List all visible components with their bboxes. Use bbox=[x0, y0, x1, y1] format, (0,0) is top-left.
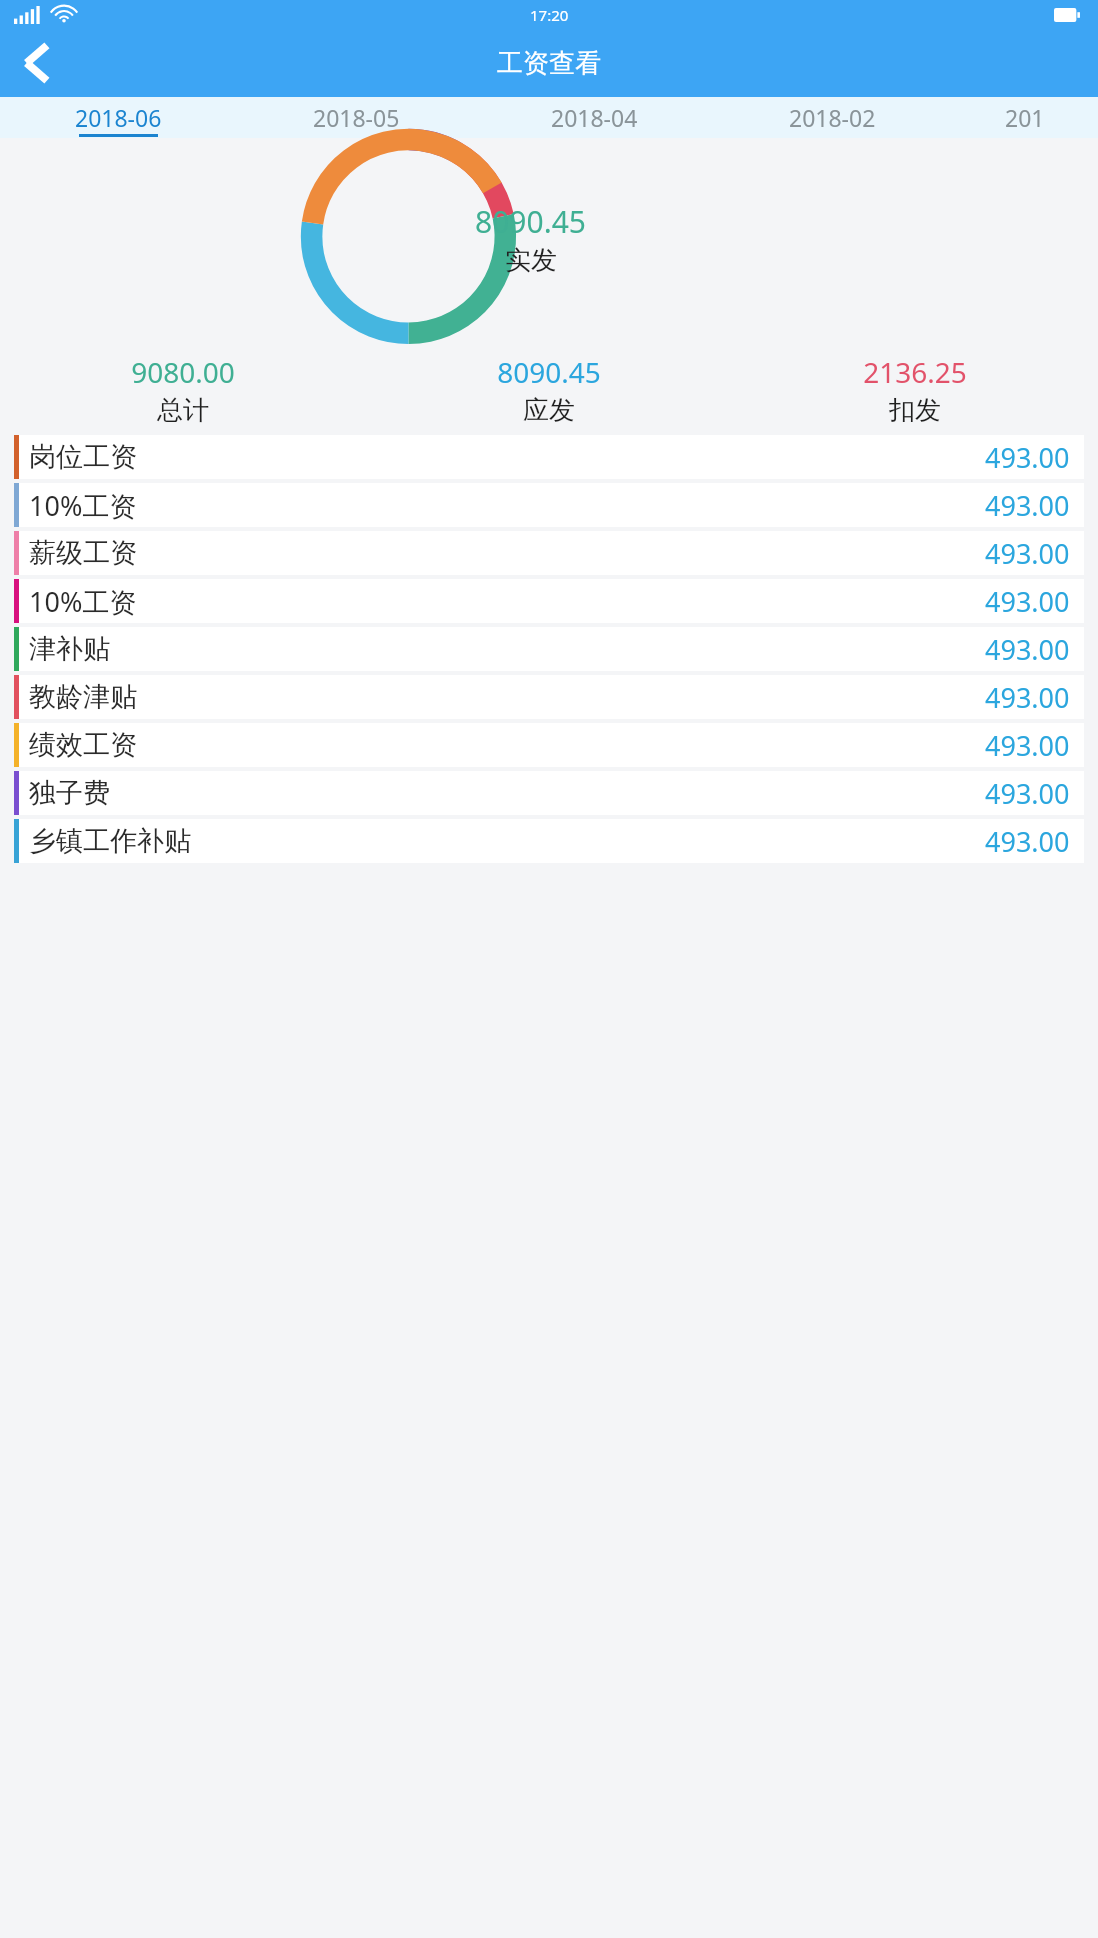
button[interactable]: 岗位工资 bbox=[14, 435, 1084, 479]
staticText: 493.00 bbox=[985, 439, 1070, 476]
staticText: 10%工资 bbox=[29, 487, 137, 524]
staticText: 工资查看 bbox=[497, 47, 601, 80]
button[interactable]: 10%工资 bbox=[14, 483, 1084, 527]
staticText: 扣发 bbox=[889, 394, 941, 427]
staticText: 493.00 bbox=[985, 631, 1070, 668]
staticText: 2018-05 bbox=[313, 102, 400, 133]
staticText: 实发 bbox=[505, 244, 557, 277]
staticText: 493.00 bbox=[985, 679, 1070, 716]
button[interactable]: 10%工资 bbox=[14, 579, 1084, 623]
button[interactable]: 8090.45 bbox=[366, 353, 732, 427]
staticText: 岗位工资 bbox=[29, 440, 137, 474]
staticText: 10%工资 bbox=[29, 583, 137, 620]
staticText: 2018-02 bbox=[789, 102, 876, 133]
button[interactable]: 2018-04 bbox=[475, 97, 713, 138]
staticText: 493.00 bbox=[985, 727, 1070, 764]
button[interactable]: 津补贴 bbox=[14, 627, 1084, 671]
staticText: 8090.45 bbox=[497, 353, 601, 391]
button[interactable]: 绩效工资 bbox=[14, 723, 1084, 767]
staticText: 2018-04 bbox=[551, 102, 638, 133]
staticText: 493.00 bbox=[985, 775, 1070, 812]
staticText: 绩效工资 bbox=[29, 728, 137, 762]
staticText: 17:20 bbox=[530, 5, 569, 25]
staticText: 薪级工资 bbox=[29, 536, 137, 570]
button[interactable]: 乡镇工作补贴 bbox=[14, 819, 1084, 863]
staticText: 总计 bbox=[157, 394, 209, 427]
staticText: 8090.45 bbox=[475, 201, 586, 242]
staticText: 201 bbox=[1005, 102, 1045, 133]
staticText: 应发 bbox=[523, 394, 575, 427]
button[interactable]: 2018-02 bbox=[713, 97, 951, 138]
staticText: 教龄津贴 bbox=[29, 680, 137, 714]
staticText: 独子费 bbox=[29, 776, 110, 810]
staticText: 493.00 bbox=[985, 487, 1070, 524]
staticText: 9080.00 bbox=[131, 353, 235, 391]
button[interactable]: 2018-06 bbox=[0, 97, 237, 138]
staticText: 2018-06 bbox=[75, 102, 162, 133]
button[interactable]: 2136.25 bbox=[732, 353, 1098, 427]
staticText: 493.00 bbox=[985, 583, 1070, 620]
staticText: 493.00 bbox=[985, 823, 1070, 860]
staticText: 2136.25 bbox=[863, 353, 967, 391]
button[interactable]: 薪级工资 bbox=[14, 531, 1084, 575]
button[interactable]: 教龄津贴 bbox=[14, 675, 1084, 719]
staticText: 493.00 bbox=[985, 535, 1070, 572]
button[interactable]: Back bbox=[8, 35, 64, 91]
button[interactable]: 9080.00 bbox=[0, 353, 366, 427]
button[interactable]: 201 bbox=[951, 97, 1098, 138]
button[interactable]: 2018-05 bbox=[237, 97, 475, 138]
staticText: 乡镇工作补贴 bbox=[29, 824, 191, 858]
staticText: 津补贴 bbox=[29, 632, 110, 666]
button[interactable]: 独子费 bbox=[14, 771, 1084, 815]
